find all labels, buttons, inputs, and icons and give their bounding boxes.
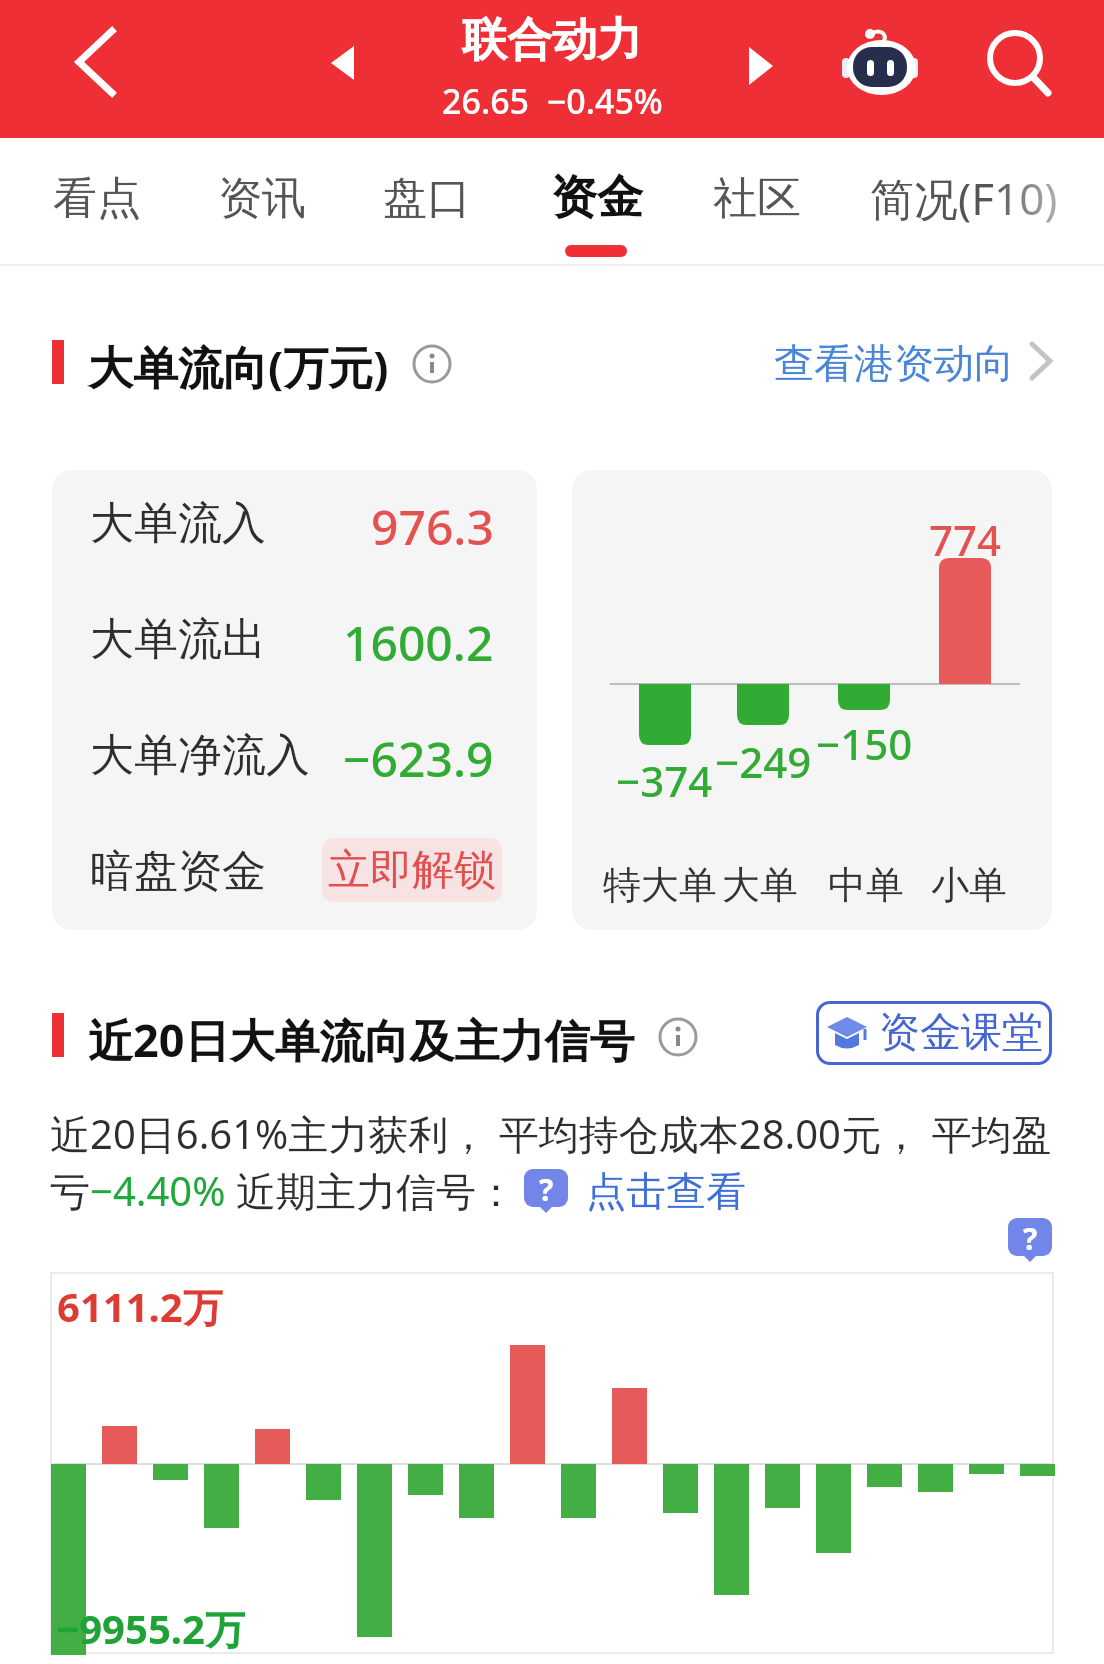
staticText: 近20日大单流向及主力信号 [88, 1009, 635, 1070]
staticText: 6111.2万 [57, 1279, 223, 1334]
staticText: 盘口 [383, 171, 471, 226]
staticText: −150 [816, 715, 913, 765]
staticText: 社区 [713, 171, 801, 226]
staticText: 大单流向(万元) [88, 336, 389, 397]
staticText: 看点 [53, 171, 141, 226]
staticText: 大单流入 [90, 496, 266, 551]
button[interactable] [60, 20, 130, 104]
staticText: 特大单 [603, 861, 717, 909]
staticText: 中单 [828, 861, 904, 909]
staticText: 近20日6.61%主力获利， 平均持仓成本28.00元， 平均盈 [50, 1106, 1052, 1161]
button[interactable] [320, 36, 364, 90]
staticText: 小单 [931, 861, 1007, 909]
staticText: −9955.2万 [56, 1601, 245, 1656]
button[interactable] [840, 18, 920, 110]
staticText: −249 [715, 733, 812, 783]
staticText: 亏−4.40% 近期主力信号： [50, 1163, 516, 1218]
button[interactable]: 资金 [540, 138, 654, 258]
button[interactable]: 看点 [45, 138, 149, 258]
staticText: 暗盘资金 [90, 844, 266, 899]
button[interactable] [985, 26, 1065, 110]
staticText: ? [1023, 1218, 1038, 1256]
staticText: 大单净流入 [90, 728, 310, 783]
staticText: 资讯 [218, 171, 306, 226]
staticText: 资金课堂 [879, 1007, 1043, 1059]
button[interactable]: 立即解锁 [322, 838, 502, 902]
staticText: 资金 [551, 169, 643, 227]
staticText: 联合动力 [462, 12, 642, 69]
staticText: 774 [929, 511, 1002, 561]
staticText: −623.9 [343, 726, 494, 790]
button[interactable]: 简况(F10) [870, 138, 1090, 258]
button[interactable]: 资讯 [210, 138, 314, 258]
staticText: 立即解锁 [328, 844, 496, 897]
button[interactable] [738, 36, 782, 90]
button[interactable]: 查看港资动向 [770, 330, 1060, 390]
staticText: 点击查看 [586, 1166, 746, 1216]
button[interactable]: 盘口 [375, 138, 479, 258]
staticText: ? [539, 1169, 554, 1207]
button[interactable]: 资金课堂 [816, 1001, 1052, 1065]
staticText: 976.3 [371, 494, 494, 558]
staticText: 查看港资动向 [774, 338, 1014, 388]
staticText: −374 [616, 752, 713, 802]
staticText: 26.65 −0.45% [442, 78, 663, 124]
staticText: 简况(F10) [870, 168, 1058, 228]
staticText: 1600.2 [343, 610, 494, 674]
staticText: 大单 [722, 861, 798, 909]
button[interactable]: ? [524, 1169, 568, 1213]
staticText: 大单流出 [90, 612, 266, 667]
button[interactable]: 点击查看 [586, 1166, 746, 1216]
button[interactable]: 社区 [705, 138, 809, 258]
button[interactable]: ? [1008, 1218, 1052, 1262]
